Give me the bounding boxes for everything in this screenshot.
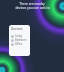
button[interactable]: Office xyxy=(11,42,28,46)
button[interactable]: Living Room TV xyxy=(11,34,28,38)
button[interactable]: Devices xyxy=(9,25,30,56)
staticText: There are nearby xyxy=(19,2,45,6)
button[interactable]: Bedroom xyxy=(11,38,28,42)
staticText: Devices xyxy=(11,27,23,31)
staticText: Living Room TV xyxy=(15,34,28,38)
staticText: devices you can cast to xyxy=(15,6,50,10)
staticText: Bedroom xyxy=(15,38,27,42)
staticText: Office xyxy=(15,42,23,46)
